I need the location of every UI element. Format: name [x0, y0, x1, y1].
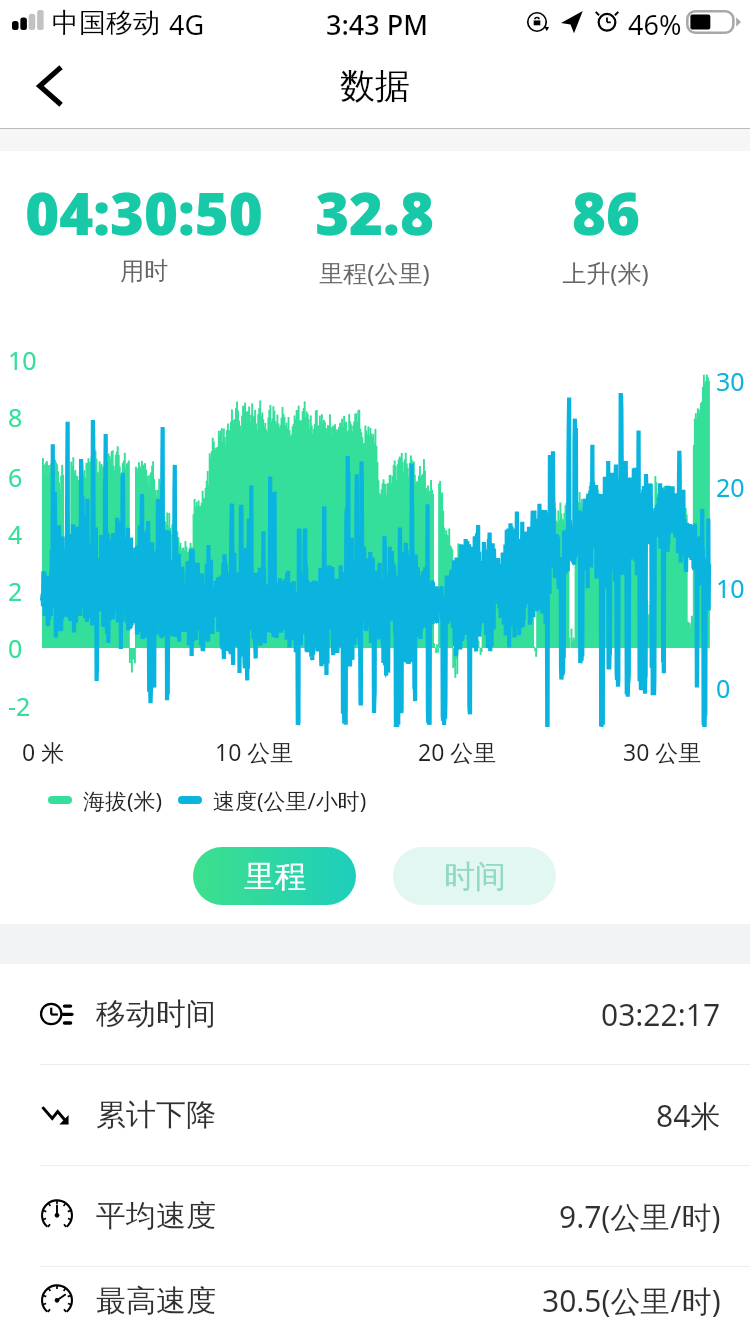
button[interactable]: 里程 [193, 847, 356, 905]
staticText: 84米 [656, 1095, 721, 1136]
staticText: 32.8 [315, 173, 434, 252]
staticText: 海拔(米) [83, 785, 163, 815]
staticText: 30 [716, 364, 745, 398]
staticText: 最高速度 [96, 1282, 216, 1320]
staticText: 04:30:50 [25, 173, 263, 252]
staticText: 里程 [244, 857, 306, 896]
staticText: 2 [8, 574, 23, 608]
staticText: 3:43 PM [326, 6, 428, 43]
staticText: -2 [8, 689, 31, 723]
staticText: 10 公里 [215, 736, 294, 767]
staticText: 平均速度 [96, 1197, 216, 1235]
button[interactable]: 平均速度 [0, 1166, 750, 1267]
staticText: 86 [572, 173, 640, 252]
staticText: 10 [716, 571, 745, 605]
staticText: 速度(公里/小时) [213, 785, 367, 815]
staticText: 累计下降 [96, 1096, 216, 1134]
staticText: 4G [169, 6, 205, 43]
staticText: 数据 [340, 64, 410, 108]
staticText: 中国移动 [52, 6, 160, 40]
button[interactable]: 累计下降 [0, 1065, 750, 1166]
staticText: 9.7(公里/时) [559, 1196, 721, 1237]
staticText: 6 [8, 460, 23, 494]
staticText: 0 [716, 671, 731, 705]
staticText: 4 [8, 517, 23, 551]
staticText: 用时 [120, 256, 168, 286]
button[interactable]: Back [14, 44, 84, 128]
staticText: 0 米 [22, 736, 65, 767]
button[interactable]: 移动时间 [0, 964, 750, 1065]
staticText: 里程(公里) [319, 256, 430, 289]
staticText: 46% [628, 6, 682, 43]
staticText: 10 [8, 343, 37, 377]
staticText: 上升(米) [562, 256, 649, 289]
button[interactable]: 最高速度 [0, 1267, 750, 1334]
staticText: 0 [8, 631, 23, 665]
staticText: 20 [716, 470, 745, 504]
staticText: 20 公里 [418, 736, 497, 767]
staticText: 03:22:17 [601, 994, 721, 1035]
staticText: 30 公里 [623, 736, 702, 767]
staticText: 30.5(公里/时) [542, 1280, 721, 1321]
staticText: 8 [8, 400, 23, 434]
button[interactable]: 时间 [393, 847, 556, 905]
staticText: 移动时间 [96, 995, 216, 1033]
staticText: 时间 [444, 857, 506, 896]
